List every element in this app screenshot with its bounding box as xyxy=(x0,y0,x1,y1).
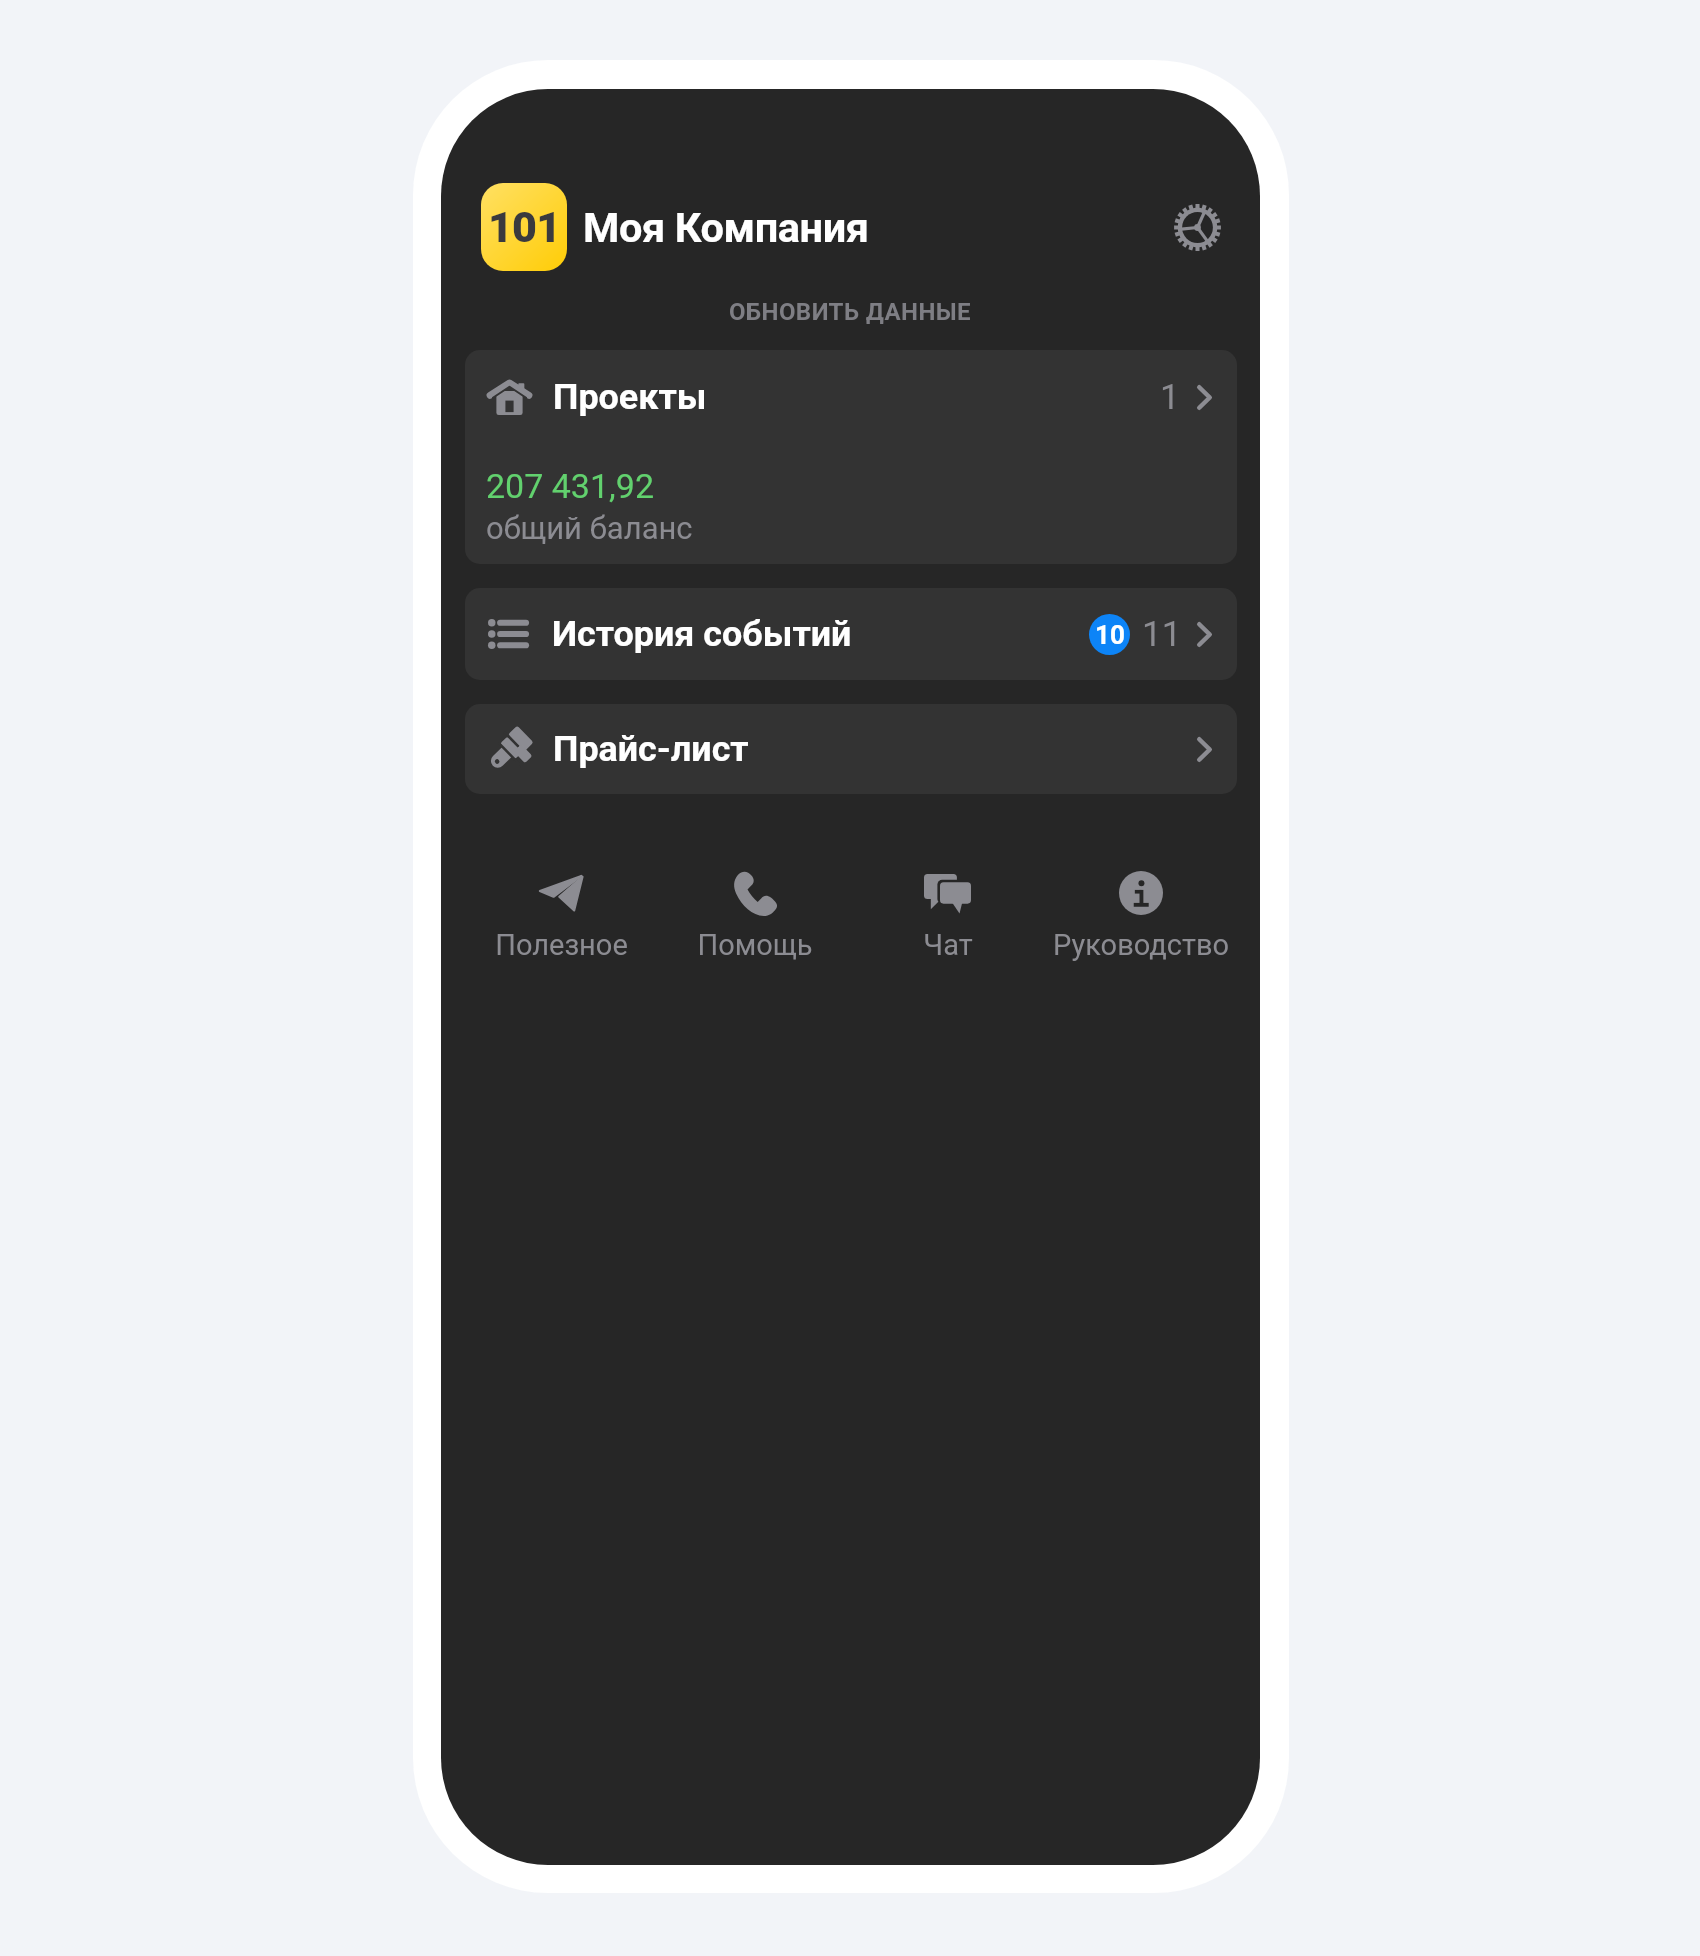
button[interactable]: Руководство xyxy=(1044,858,1237,962)
staticText: Руководство xyxy=(1053,928,1229,962)
button[interactable]: ОБНОВИТЬ ДАННЫЕ xyxy=(729,298,972,326)
button[interactable]: История событий xyxy=(465,588,1237,680)
button[interactable]: Settings xyxy=(1169,199,1225,255)
staticText: 10 xyxy=(1095,620,1125,650)
staticText: общий баланс xyxy=(486,510,693,546)
staticText: 101 xyxy=(488,202,561,252)
button[interactable]: Полезное xyxy=(464,858,658,962)
staticText: Чат xyxy=(923,928,973,962)
button[interactable]: Прайс-лист xyxy=(465,704,1237,794)
staticText: 1 xyxy=(1160,377,1180,418)
button[interactable]: Чат xyxy=(851,858,1044,962)
staticText: Прайс-лист xyxy=(553,728,749,770)
button[interactable]: Проекты xyxy=(465,350,1237,564)
staticText: Моя Компания xyxy=(583,203,869,252)
staticText: 11 xyxy=(1142,614,1182,655)
staticText: 207 431,92 xyxy=(486,466,654,506)
button[interactable]: Помощь xyxy=(658,858,851,962)
staticText: Помощь xyxy=(697,928,813,962)
staticText: Проекты xyxy=(553,376,707,418)
staticText: История событий xyxy=(552,613,852,655)
staticText: Полезное xyxy=(495,928,628,962)
